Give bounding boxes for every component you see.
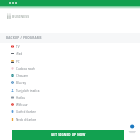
- button[interactable]: GET SIGNED UP NOW: [12, 130, 124, 140]
- button[interactable]: Nrob d tlarkee: [0, 116, 140, 123]
- button[interactable]: TV: [0, 43, 140, 50]
- staticText: Blu-ray: [16, 81, 26, 85]
- staticText: Wificuur: [16, 103, 28, 107]
- button[interactable]: Blu-ray: [0, 79, 140, 86]
- staticText: Hatlcu: [16, 96, 26, 100]
- staticText: Uath d tlarkee: [16, 110, 36, 114]
- button[interactable]: BUSINESS: [7, 13, 30, 19]
- staticText: Nrob d tlarkee: [16, 118, 37, 122]
- staticText: iPad: [16, 52, 23, 56]
- button[interactable]: Tuej pbih tnatlca: [0, 87, 140, 94]
- button[interactable]: PC: [0, 58, 140, 65]
- staticText: Tuej pbih tnatlca: [16, 89, 40, 93]
- button[interactable]: Uath d tlarkee: [0, 108, 140, 115]
- button[interactable]: iPad: [0, 50, 140, 57]
- staticText: PC: [16, 60, 20, 64]
- button[interactable]: Cuoboa noah: [0, 65, 140, 72]
- staticText: Cuoboa noah: [16, 67, 35, 71]
- button[interactable]: Wificuur: [0, 101, 140, 108]
- staticText: BUSINESS: [12, 14, 30, 19]
- staticText: GET SIGNED UP NOW: [51, 133, 86, 137]
- button[interactable]: Hatlcu: [0, 94, 140, 101]
- staticText: Chouarn: [16, 74, 29, 78]
- staticText: BACKUP / PROGRAMS: [6, 36, 42, 40]
- staticText: TV: [16, 45, 20, 49]
- button[interactable]: Chouarn: [0, 72, 140, 79]
